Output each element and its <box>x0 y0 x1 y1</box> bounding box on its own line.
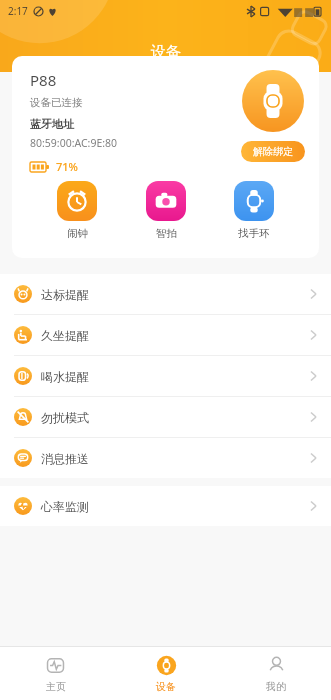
staticText: 喝水提醒 <box>41 369 89 384</box>
button[interactable]: 找手环 <box>230 177 278 244</box>
staticText: 消息推送 <box>41 451 89 466</box>
button[interactable]: 智拍 <box>142 177 190 244</box>
button[interactable]: 久坐提醒 <box>0 315 331 355</box>
button[interactable]: Device <box>242 70 304 132</box>
staticText: 闹钟 <box>67 227 88 240</box>
staticText: 蓝牙地址 <box>30 117 74 131</box>
staticText: 心率监测 <box>41 499 89 514</box>
button[interactable]: 设备 <box>111 647 221 700</box>
button[interactable]: 勿扰模式 <box>0 397 331 437</box>
staticText: 找手环 <box>238 227 270 240</box>
staticText: 智拍 <box>156 227 177 240</box>
staticText: P88 <box>30 70 57 90</box>
staticText: 80:59:00:AC:9E:80 <box>30 136 118 150</box>
button[interactable]: 喝水提醒 <box>0 356 331 396</box>
staticText: 设备 <box>151 43 181 62</box>
staticText: 71% <box>56 159 78 174</box>
staticText: 我的 <box>266 680 286 693</box>
staticText: 达标提醒 <box>41 287 89 302</box>
button[interactable]: 心率监测 <box>0 486 331 526</box>
staticText: 2:17 <box>8 4 28 18</box>
button[interactable]: 我的 <box>221 647 331 700</box>
staticText: 设备已连接 <box>30 96 83 109</box>
button[interactable]: 闹钟 <box>53 177 101 244</box>
staticText: 设备 <box>156 680 176 693</box>
staticText: 主页 <box>46 680 66 693</box>
staticText: 解除绑定 <box>253 145 293 158</box>
button[interactable]: 消息推送 <box>0 438 331 478</box>
button[interactable]: 解除绑定 <box>241 141 305 162</box>
button[interactable]: 达标提醒 <box>0 274 331 314</box>
staticText: 久坐提醒 <box>41 328 89 343</box>
button[interactable]: 主页 <box>0 647 111 700</box>
staticText: 勿扰模式 <box>41 410 89 425</box>
